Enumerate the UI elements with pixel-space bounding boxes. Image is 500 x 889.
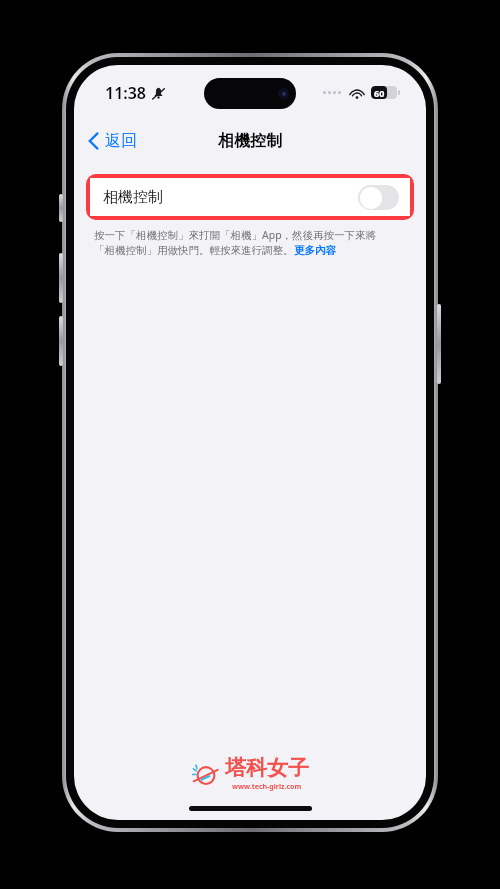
staticText: 60 [374, 87, 385, 99]
staticText: 返回 [105, 131, 137, 151]
button[interactable]: 返回 [82, 127, 143, 155]
staticText: 相機控制 [103, 188, 163, 207]
staticText: 「相機控制」用做快門。輕按來進行調整。 [94, 244, 294, 257]
button[interactable]: 更多內容 [294, 244, 336, 257]
button[interactable]: 相機控制 [90, 178, 410, 216]
staticText: 更多內容 [294, 244, 336, 257]
staticText: www.tech-girlz.com [232, 782, 302, 792]
staticText: 按一下「相機控制」來打開「相機」App，然後再按一下來將 [94, 228, 377, 242]
staticText: 相機控制 [218, 131, 282, 151]
staticText: 11:38 [105, 82, 147, 104]
button[interactable]: Camera Control toggle [358, 185, 399, 210]
staticText: 塔科女子 [225, 755, 309, 781]
